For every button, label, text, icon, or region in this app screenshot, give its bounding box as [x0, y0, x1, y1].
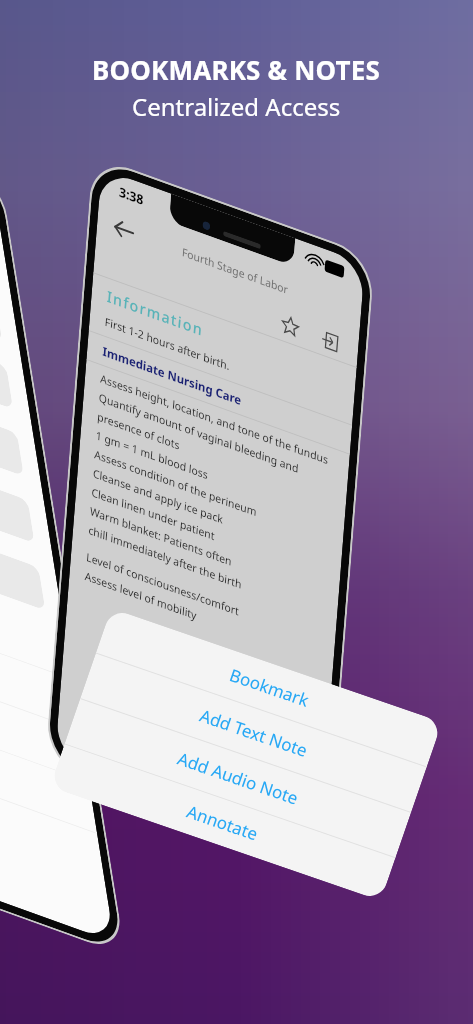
button[interactable] — [0, 271, 41, 555]
staticText: Quantify amount of vaginal bleeding and — [92, 319, 306, 546]
button[interactable]: Back — [97, 202, 150, 258]
staticText: Annotate — [184, 800, 261, 845]
staticText: Fourth Stage of Labor — [175, 207, 295, 334]
staticText: 3:38 — [111, 174, 152, 218]
staticText: Add Audio Note — [174, 747, 302, 810]
staticText: Immediate Nursing Care — [95, 294, 249, 457]
button[interactable] — [0, 137, 20, 421]
staticText: Add Text Note — [197, 704, 311, 762]
button[interactable]: Bookmark — [96, 608, 442, 767]
staticText: Bookmark — [227, 663, 313, 712]
button[interactable]: Add Audio Note — [65, 699, 411, 857]
staticText: chill immediately after the birth — [81, 468, 249, 646]
button[interactable] — [0, 70, 9, 354]
button[interactable]: Bookmark — [264, 299, 317, 355]
staticText: First 1-2 hours after birth. — [98, 270, 237, 417]
staticText: Centralized Access — [132, 90, 341, 123]
button[interactable] — [0, 338, 52, 623]
staticText: Assess height, location, and tone of the… — [93, 291, 335, 547]
staticText: Warm blanket: Patients often — [83, 453, 239, 619]
button[interactable]: Add note — [303, 313, 356, 369]
staticText: BOOKMARKS & NOTES — [92, 52, 381, 87]
staticText: Assess level of mobility — [78, 528, 204, 662]
staticText: Clean linen under patient — [84, 441, 222, 586]
staticText: Cleanse and apply ice pack — [86, 419, 231, 573]
staticText: Assess condition of the perineum — [87, 389, 264, 576]
staticText: Level of consciousness/comfort — [79, 495, 247, 672]
button[interactable]: Add Text Note — [80, 654, 427, 812]
button[interactable] — [0, 204, 30, 488]
button[interactable] — [0, 405, 63, 690]
staticText: Information — [98, 252, 213, 374]
staticText: 1 gm = 1 mL blood loss — [89, 388, 215, 522]
button[interactable]: Annotate — [50, 744, 395, 901]
staticText: presence of clots — [90, 379, 187, 482]
